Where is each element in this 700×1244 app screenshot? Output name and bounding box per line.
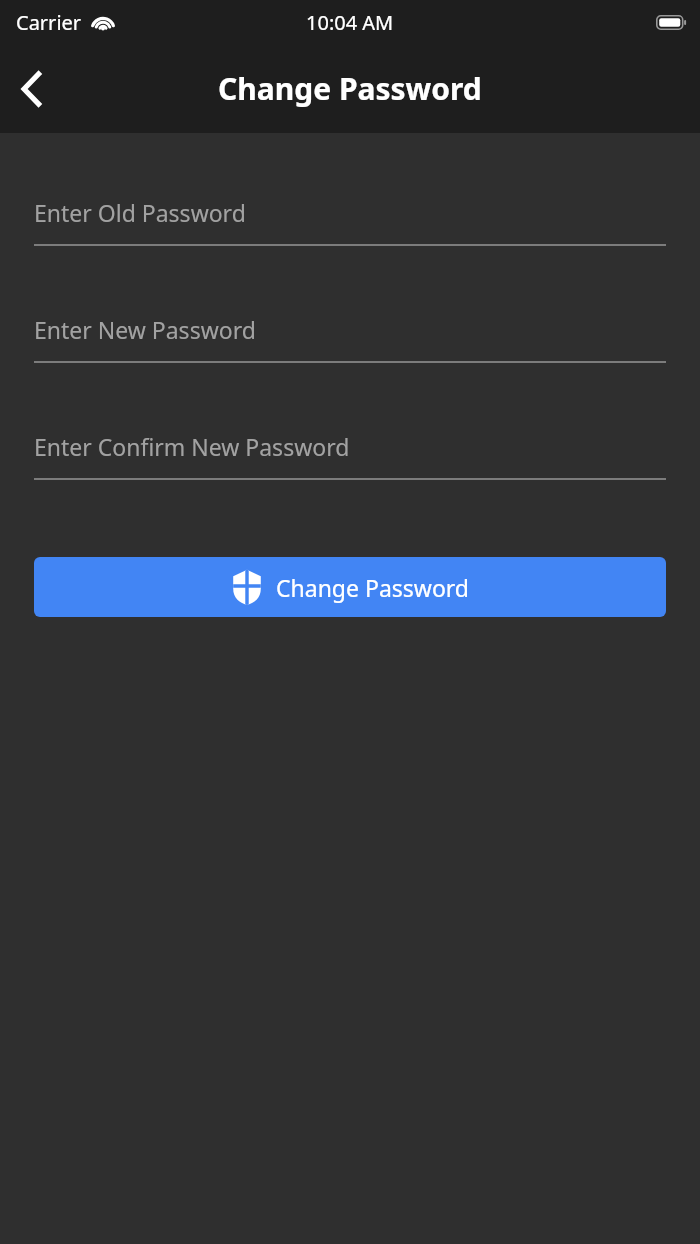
staticText: Change Password: [218, 68, 482, 109]
staticText: Enter Old Password: [34, 197, 246, 228]
button[interactable]: Enter Confirm New Password: [34, 415, 666, 532]
button[interactable]: Enter New Password: [34, 298, 666, 415]
staticText: Carrier: [16, 9, 82, 36]
button[interactable]: Enter Old Password: [34, 181, 666, 298]
staticText: Enter Confirm New Password: [34, 431, 350, 462]
staticText: 10:04 AM: [306, 9, 394, 36]
button[interactable]: Change Password: [34, 557, 666, 617]
staticText: Enter New Password: [34, 314, 256, 345]
staticText: Change Password: [276, 572, 469, 603]
button[interactable]: Back: [0, 57, 64, 121]
